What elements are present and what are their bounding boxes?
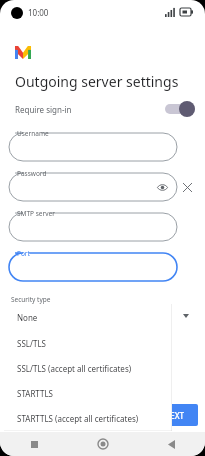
- staticText: SSL/TLS: [17, 338, 46, 349]
- button[interactable]: STARTTLS (accept all certificates): [4, 406, 172, 431]
- button[interactable]: Home: [69, 432, 137, 456]
- button[interactable]: Require sign-in toggle: [165, 101, 195, 117]
- button[interactable]: Username: [9, 133, 177, 161]
- button[interactable]: Back: [137, 432, 205, 456]
- button[interactable]: Clear: [180, 180, 194, 194]
- button[interactable]: Recent apps: [0, 432, 69, 456]
- staticText: STARTTLS (accept all certificates): [17, 413, 139, 424]
- staticText: SMTP server: [17, 209, 55, 218]
- button[interactable]: None: [4, 304, 172, 331]
- button[interactable]: Security type dropdown: [181, 311, 191, 321]
- staticText: Require sign-in: [15, 104, 72, 115]
- button[interactable]: Password: [9, 173, 177, 201]
- staticText: Port: [17, 249, 30, 258]
- staticText: STARTTLS: [17, 388, 54, 399]
- staticText: Password: [17, 169, 47, 178]
- staticText: SSL/TLS (accept all certificates): [17, 363, 132, 374]
- staticText: 10:00: [28, 7, 49, 18]
- button[interactable]: SSL/TLS (accept all certificates): [4, 356, 172, 381]
- staticText: Outgoing server settings: [15, 72, 179, 91]
- staticText: NEXT: [164, 410, 185, 421]
- staticText: None: [17, 312, 38, 323]
- button[interactable]: NEXT: [150, 404, 198, 426]
- button[interactable]: Show password: [155, 180, 169, 194]
- staticText: Security type: [11, 295, 51, 304]
- button[interactable]: STARTTLS: [4, 381, 172, 406]
- button[interactable]: Port: [9, 253, 177, 281]
- staticText: Username: [17, 129, 49, 138]
- button[interactable]: Require sign-in: [0, 98, 205, 120]
- button[interactable]: SMTP server: [9, 213, 177, 241]
- button[interactable]: SSL/TLS: [4, 331, 172, 356]
